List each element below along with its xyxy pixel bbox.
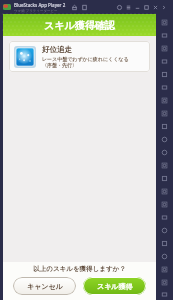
button[interactable]: スキル獲得 xyxy=(83,277,146,295)
button[interactable]: Fullscreen xyxy=(158,16,171,29)
button[interactable]: 好位追走 xyxy=(9,41,150,72)
button[interactable]: Stream xyxy=(158,224,171,237)
staticText: キャンセル xyxy=(27,282,63,291)
button[interactable]: Back xyxy=(158,263,171,276)
staticText: レース中盤でわずかに疲れにくくなる xyxy=(42,56,129,62)
button[interactable]: Help xyxy=(116,4,123,11)
staticText: 好位追走 xyxy=(42,45,72,54)
button[interactable]: Multi instance xyxy=(158,146,171,159)
button[interactable]: Shake xyxy=(158,81,171,94)
button[interactable]: Settings xyxy=(158,159,171,172)
button[interactable]: Location xyxy=(158,68,171,81)
button[interactable]: Volume xyxy=(158,29,171,42)
button[interactable]: Maximize xyxy=(143,4,150,11)
button[interactable]: Menu xyxy=(125,4,132,11)
staticText: ウマ娘 プリティーダービー xyxy=(14,8,58,13)
button[interactable]: Sync xyxy=(158,198,171,211)
button[interactable]: Apps xyxy=(81,4,88,11)
button[interactable]: Video xyxy=(158,107,171,120)
button[interactable]: Macro xyxy=(158,133,171,146)
staticText: BlueStacks App Player 2 xyxy=(14,2,66,8)
staticText: 〈序盤・先行〉 xyxy=(42,62,77,68)
button[interactable]: Screenshot xyxy=(158,55,171,68)
staticText: 以上のスキルを獲得しますか？ xyxy=(33,265,126,273)
button[interactable]: Rotate xyxy=(158,94,171,107)
button[interactable]: Recents xyxy=(158,250,171,263)
button[interactable]: Home xyxy=(158,276,171,289)
button[interactable]: Eco mode xyxy=(158,211,171,224)
button[interactable]: Minimize xyxy=(134,4,141,11)
button[interactable]: Home xyxy=(71,4,78,11)
button[interactable]: キャンセル xyxy=(13,277,76,295)
button[interactable]: Close xyxy=(152,4,159,11)
button[interactable]: Keyboard xyxy=(158,42,171,55)
button[interactable]: Gamepad xyxy=(158,120,171,133)
staticText: スキル獲得確認 xyxy=(44,19,115,32)
button[interactable]: Copy xyxy=(158,172,171,185)
button[interactable]: Paste xyxy=(158,185,171,198)
button[interactable]: Collapse xyxy=(161,4,168,11)
button[interactable]: Tasks xyxy=(158,289,171,300)
staticText: スキル獲得 xyxy=(97,282,133,291)
button[interactable]: More xyxy=(158,237,171,250)
